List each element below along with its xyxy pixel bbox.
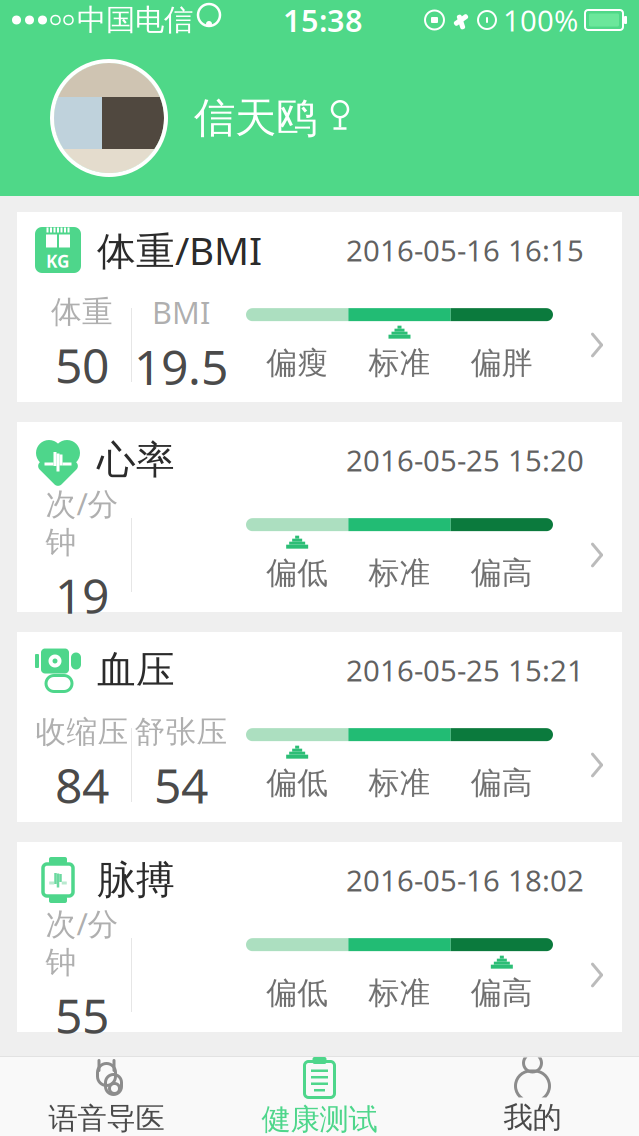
staticText: 次/分钟 [45, 483, 118, 561]
staticText: 偏低 [266, 764, 328, 802]
staticText: 偏低 [266, 974, 328, 1012]
staticText: 100% [503, 0, 578, 39]
staticText: 信天鸥 [194, 93, 317, 143]
staticText: 收缩压 [35, 713, 128, 751]
staticText: 脉搏 [97, 856, 175, 904]
staticText: 偏高 [471, 554, 533, 592]
button[interactable]: KG [17, 212, 622, 402]
button[interactable]: 健康测试 [213, 1057, 426, 1136]
staticText: 19 [55, 563, 109, 627]
staticText: 50 [55, 333, 109, 397]
staticText: 心率 [97, 436, 175, 484]
staticText: 15:38 [283, 0, 363, 40]
staticText: 标准 [368, 554, 430, 592]
staticText: 偏高 [471, 764, 533, 802]
staticText: 84 [55, 753, 109, 817]
staticText: 血压 [97, 646, 175, 694]
staticText: 54 [154, 753, 208, 817]
staticText: 偏低 [266, 554, 328, 592]
staticText: 标准 [368, 764, 430, 802]
button[interactable]: 脉搏 [17, 842, 622, 1032]
staticText: 2016-05-16 16:15 [346, 230, 584, 269]
staticText: 标准 [368, 974, 430, 1012]
staticText: 2016-05-25 15:20 [346, 440, 584, 479]
staticText: 2016-05-25 15:21 [346, 650, 584, 689]
staticText: 2016-05-16 18:02 [346, 860, 584, 899]
staticText: 19.5 [134, 334, 228, 398]
staticText: 次/分钟 [45, 903, 118, 981]
staticText: 偏胖 [471, 344, 533, 382]
staticText: 舒张压 [134, 713, 227, 751]
staticText: 偏高 [471, 974, 533, 1012]
button[interactable]: 心率 [17, 422, 622, 612]
staticText: 偏瘦 [266, 344, 328, 382]
staticText: 我的 [503, 1099, 561, 1135]
button[interactable]: 血压 [17, 632, 622, 822]
staticText: BMI [152, 292, 210, 332]
staticText: 中国电信 [77, 2, 193, 38]
button[interactable]: 我的 [426, 1057, 639, 1136]
staticText: 标准 [368, 344, 430, 382]
staticText: 健康测试 [261, 1101, 377, 1136]
staticText: 体重/BMI [97, 224, 262, 276]
staticText: 体重 [51, 293, 113, 331]
button[interactable]: 语音导医 [0, 1057, 213, 1136]
staticText: 55 [55, 983, 109, 1047]
button[interactable]: 信天鸥 [0, 40, 639, 196]
staticText: KG [46, 249, 70, 272]
staticText: 语音导医 [48, 1100, 164, 1136]
